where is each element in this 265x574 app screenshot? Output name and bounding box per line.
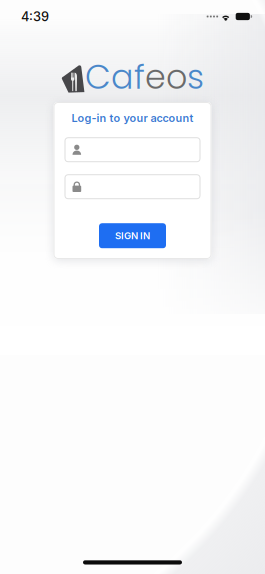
staticText: s — [187, 54, 204, 100]
staticText: 4:39 — [21, 9, 49, 24]
staticText: eo — [145, 54, 187, 100]
staticText: Caf — [85, 54, 145, 100]
staticText: Log-in to your account — [71, 111, 193, 125]
staticText: SIGN IN — [115, 230, 150, 241]
button[interactable] — [64, 174, 200, 199]
button[interactable]: SIGN IN — [99, 223, 166, 248]
button[interactable] — [64, 137, 200, 162]
